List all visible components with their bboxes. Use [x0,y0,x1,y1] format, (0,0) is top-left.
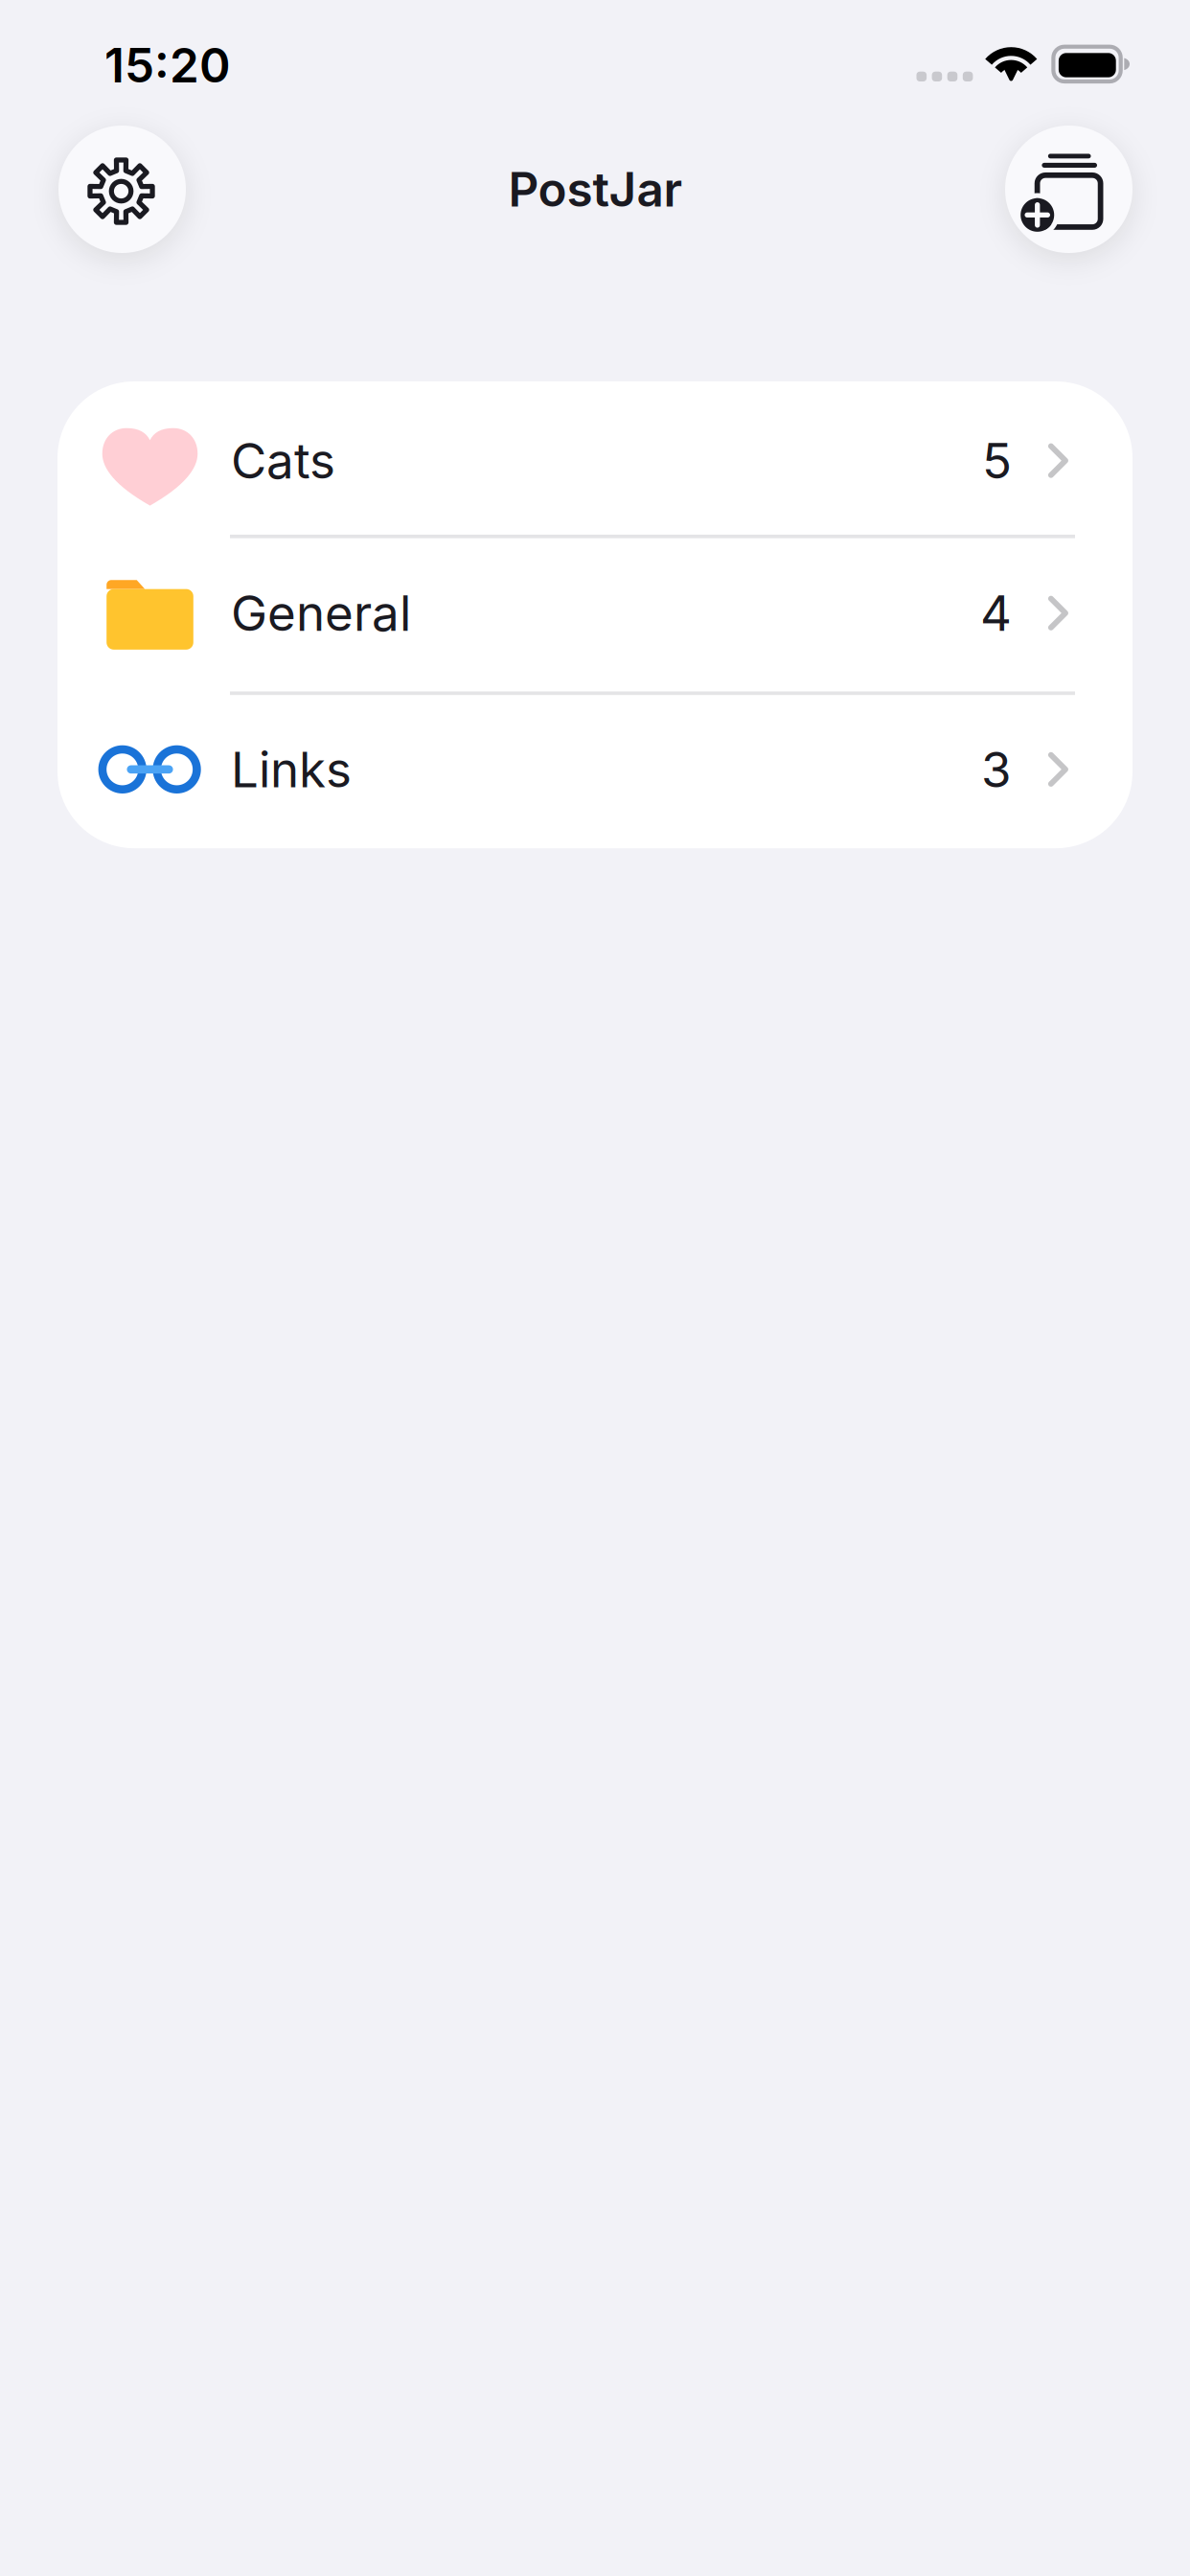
button[interactable]: New Jar [1005,126,1133,253]
staticText: Cats [231,431,335,490]
staticText: PostJar [508,161,683,218]
staticText: 15:20 [104,37,231,94]
staticText: 3 [981,740,1012,799]
button[interactable]: Links [57,695,1133,848]
button[interactable]: Settings [58,126,186,253]
button[interactable]: General [57,538,1133,691]
staticText: Links [231,740,352,799]
staticText: 4 [980,584,1012,643]
staticText: General [231,584,411,643]
button[interactable]: Cats [57,381,1133,535]
staticText: 5 [982,431,1012,490]
